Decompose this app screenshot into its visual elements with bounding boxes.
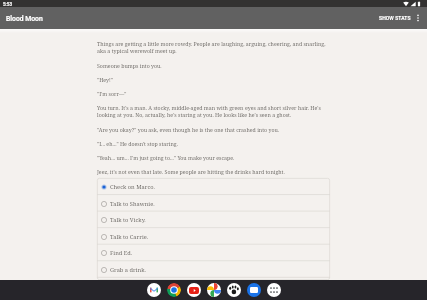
staticText: Someone bumps into you. (97, 62, 330, 69)
button[interactable]: More options (414, 10, 424, 26)
staticText: Talk to Carrie. (110, 233, 149, 241)
staticText: Check on Marco. (110, 183, 155, 191)
staticText: "Hey!" (97, 76, 330, 83)
staticText: "I'm sorr—" (97, 90, 330, 97)
staticText: Talk to Shawnie. (110, 200, 155, 208)
staticText: 5:53 (3, 2, 13, 7)
button[interactable]: Find Ed. (97, 244, 330, 261)
staticText: Blood Moon (6, 15, 43, 23)
staticText: Things are getting a little more rowdy. … (97, 40, 330, 55)
button[interactable]: Talk to Vicky. (97, 211, 330, 228)
staticText: Jeez, it's not even that late. Some peop… (97, 168, 330, 175)
button[interactable]: SHOW STATS (374, 10, 414, 26)
button[interactable]: Gmail (147, 283, 161, 297)
button[interactable]: All apps (267, 283, 281, 297)
button[interactable]: Photos (207, 283, 221, 297)
staticText: You turn. It's a man. A stocky, middle-a… (97, 104, 330, 119)
button[interactable]: Check on Marco. (97, 178, 330, 195)
staticText: Talk to Vicky. (110, 216, 146, 224)
staticText: "I... eh..." He doesn't stop staring. (97, 140, 330, 147)
staticText: SHOW STATS (379, 15, 411, 21)
staticText: "Yeah... um... I'm just going to..." You… (97, 154, 330, 161)
button[interactable]: Go home. (97, 277, 330, 294)
button[interactable]: Talk to Shawnie. (97, 195, 330, 212)
button[interactable]: App (247, 283, 261, 297)
staticText: Find Ed. (110, 249, 133, 257)
button[interactable]: Chrome (167, 283, 181, 297)
staticText: Grab a drink. (110, 266, 146, 274)
button[interactable]: App (227, 283, 241, 297)
button[interactable]: Talk to Carrie. (97, 228, 330, 245)
staticText: "Are you okay?" you ask, even though he … (97, 126, 330, 133)
button[interactable]: YouTube (187, 283, 201, 297)
button[interactable]: Grab a drink. (97, 261, 330, 278)
